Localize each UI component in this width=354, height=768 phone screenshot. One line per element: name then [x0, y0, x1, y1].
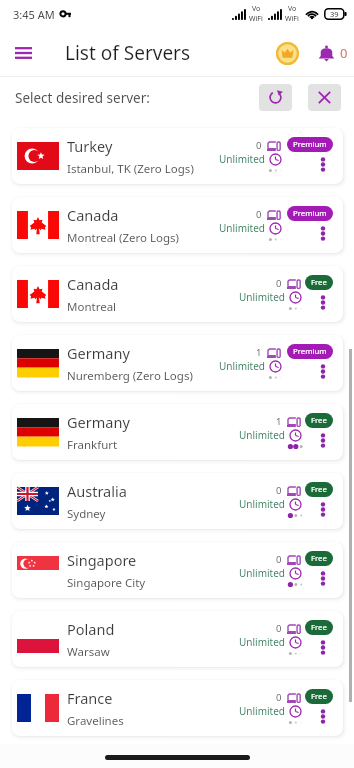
button[interactable]: Premium	[287, 137, 333, 152]
button[interactable]: Free	[305, 482, 333, 497]
button[interactable]: More options	[314, 153, 332, 175]
staticText: Premium	[293, 208, 327, 219]
staticText: Unlimited	[239, 635, 285, 649]
staticText: France	[67, 688, 113, 708]
button[interactable]: Refresh server list	[259, 84, 292, 111]
staticText: Istanbul, TK (Zero Logs)	[67, 161, 194, 177]
button[interactable]: Premium	[287, 206, 333, 221]
staticText: Germany	[67, 412, 130, 432]
staticText: List of Servers	[65, 40, 191, 66]
staticText: Free	[311, 553, 327, 564]
staticText: Montreal (Zero Logs)	[67, 230, 180, 246]
staticText: Unlimited	[239, 566, 285, 580]
staticText: Singapore City	[67, 575, 146, 591]
staticText: Australia	[67, 481, 127, 501]
staticText: Free	[311, 691, 327, 702]
staticText: Sydney	[67, 506, 106, 522]
staticText: Unlimited	[239, 704, 285, 718]
staticText: Unlimited	[239, 290, 285, 304]
button[interactable]: More options	[314, 567, 332, 589]
button[interactable]: Notifications	[318, 38, 348, 68]
button[interactable]: More options	[314, 705, 332, 727]
staticText: 0	[276, 484, 282, 497]
staticText: Unlimited	[219, 152, 265, 166]
staticText: WiFi	[285, 14, 299, 24]
button[interactable]: More options	[314, 291, 332, 313]
button[interactable]: Free	[305, 689, 333, 704]
staticText: Free	[311, 277, 327, 288]
staticText: Singapore	[67, 550, 137, 570]
staticText: Free	[311, 415, 327, 426]
button[interactable]: France	[12, 680, 343, 736]
staticText: 1	[276, 415, 282, 428]
button[interactable]: More options	[314, 360, 332, 382]
staticText: Germany	[67, 343, 130, 363]
button[interactable]: Canada	[12, 266, 343, 322]
staticText: Vo	[288, 4, 297, 14]
staticText: Unlimited	[219, 359, 265, 373]
button[interactable]: Canada	[12, 197, 343, 253]
button[interactable]: Upgrade to premium	[271, 37, 303, 69]
button[interactable]: Australia	[12, 473, 343, 529]
staticText: Montreal	[67, 299, 117, 315]
staticText: Canada	[67, 205, 119, 225]
staticText: 0	[340, 44, 348, 62]
button[interactable]: Singapore	[12, 542, 343, 598]
staticText: 0	[276, 622, 282, 635]
staticText: 0	[276, 553, 282, 566]
staticText: WiFi	[249, 14, 263, 24]
staticText: 3:45 AM	[13, 7, 55, 22]
staticText: 39	[330, 9, 339, 19]
button[interactable]: Poland	[12, 611, 343, 667]
staticText: Gravelines	[67, 713, 124, 729]
staticText: Unlimited	[219, 221, 265, 235]
button[interactable]: More options	[314, 636, 332, 658]
button[interactable]: Free	[305, 551, 333, 566]
staticText: Premium	[293, 139, 327, 150]
staticText: Free	[311, 484, 327, 495]
button[interactable]: Open navigation menu	[5, 35, 41, 71]
button[interactable]: Germany	[12, 335, 343, 391]
staticText: 0	[256, 139, 262, 152]
staticText: Unlimited	[239, 428, 285, 442]
button[interactable]: Premium	[287, 344, 333, 359]
button[interactable]: Germany	[12, 404, 343, 460]
button[interactable]: Free	[305, 413, 333, 428]
staticText: Nuremberg (Zero Logs)	[67, 368, 193, 384]
staticText: Warsaw	[67, 644, 110, 660]
staticText: 0	[276, 691, 282, 704]
staticText: Select desired server:	[15, 89, 150, 107]
staticText: Free	[311, 622, 327, 633]
staticText: Turkey	[67, 136, 113, 156]
staticText: 0	[256, 208, 262, 221]
staticText: Premium	[293, 346, 327, 357]
button[interactable]: Close	[308, 84, 341, 111]
button[interactable]: More options	[314, 429, 332, 451]
staticText: Poland	[67, 619, 115, 639]
button[interactable]: Turkey	[12, 128, 343, 184]
staticText: Frankfurt	[67, 437, 118, 453]
staticText: Unlimited	[239, 497, 285, 511]
staticText: 1	[256, 346, 262, 359]
staticText: Canada	[67, 274, 119, 294]
button[interactable]: Free	[305, 620, 333, 635]
button[interactable]: Free	[305, 275, 333, 290]
button[interactable]: More options	[314, 498, 332, 520]
staticText: 0	[276, 277, 282, 290]
staticText: Vo	[252, 4, 261, 14]
button[interactable]: More options	[314, 222, 332, 244]
